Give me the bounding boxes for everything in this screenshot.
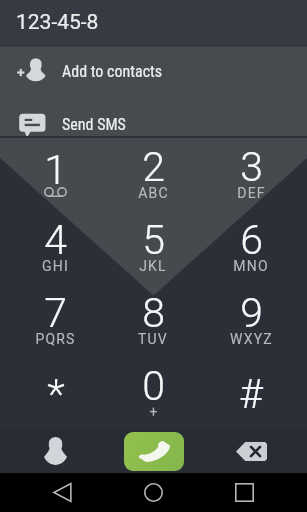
staticText: 7 — [44, 289, 67, 337]
button[interactable]: 2 — [104, 138, 202, 211]
staticText: JKL — [139, 258, 167, 274]
staticText: PQRS — [35, 331, 76, 347]
button[interactable]: 8 — [104, 284, 202, 357]
staticText: GHI — [42, 258, 69, 274]
staticText: # — [239, 370, 263, 418]
staticText: Send SMS — [62, 115, 126, 134]
button[interactable]: Send SMS — [0, 98, 307, 136]
staticText: 1 — [44, 146, 67, 194]
button[interactable]: Add to contacts — [0, 45, 307, 98]
staticText: TUV — [138, 331, 168, 347]
button[interactable]: 3 — [202, 138, 300, 211]
staticText: 9 — [240, 289, 263, 337]
button[interactable]: 5 — [104, 211, 202, 284]
staticText: Add to contacts — [62, 62, 163, 81]
staticText: DEF — [237, 185, 266, 201]
button[interactable]: * — [7, 357, 104, 430]
staticText: + — [149, 404, 159, 420]
staticText: 6 — [240, 216, 263, 264]
staticText: 2 — [142, 143, 165, 191]
staticText: MNO — [233, 258, 269, 274]
staticText: 8 — [142, 289, 165, 337]
staticText: 5 — [142, 216, 165, 264]
staticText: 3 — [240, 143, 263, 191]
button[interactable]: 7 — [7, 284, 104, 357]
staticText: * — [47, 370, 65, 418]
staticText: ABC — [138, 185, 169, 201]
staticText: 123-45-8 — [16, 10, 99, 35]
button[interactable]: 6 — [202, 211, 300, 284]
button[interactable]: Backspace — [202, 430, 300, 473]
button[interactable]: 0 — [104, 357, 202, 430]
button[interactable]: Recents — [199, 473, 290, 512]
button[interactable]: 9 — [202, 284, 300, 357]
button[interactable]: Home — [108, 473, 199, 512]
staticText: WXYZ — [230, 331, 273, 347]
button[interactable]: Call — [124, 432, 184, 471]
button[interactable]: 1 — [7, 138, 104, 211]
button[interactable]: Back — [17, 473, 108, 512]
staticText: 4 — [44, 216, 67, 264]
button[interactable]: Contacts — [7, 430, 104, 473]
staticText: 0 — [142, 362, 165, 410]
button[interactable]: 4 — [7, 211, 104, 284]
button[interactable]: # — [202, 357, 300, 430]
